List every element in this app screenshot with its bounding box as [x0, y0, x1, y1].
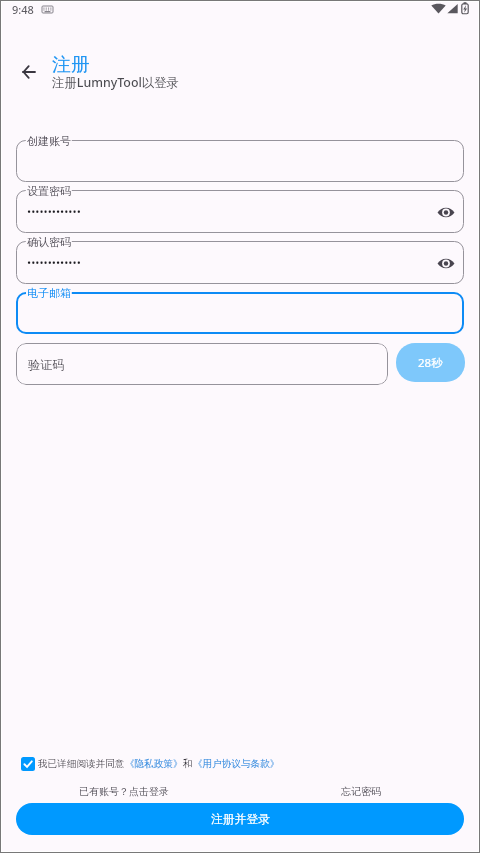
button[interactable]: •••••••••••••	[16, 241, 464, 284]
button[interactable]: Toggle password visibility	[433, 250, 459, 276]
button[interactable]: 创建账号	[16, 140, 464, 182]
button[interactable]: Back	[13, 56, 45, 88]
staticText: 忘记密码	[341, 785, 381, 798]
staticText: 注册LumnyTool以登录	[52, 74, 179, 91]
staticText: 《隐私政策》	[125, 758, 183, 770]
staticText: 9:48	[12, 2, 34, 17]
button[interactable]: 忘记密码	[341, 783, 381, 800]
staticText: 已有账号？点击登录	[79, 785, 169, 798]
staticText: 我已详细阅读并同意	[38, 758, 125, 770]
staticText: 确认密码	[27, 235, 71, 249]
button[interactable]: 我已详细阅读并同意	[21, 754, 280, 774]
button[interactable]: 注册并登录	[16, 803, 464, 835]
staticText: 《用户协议与条款》	[193, 758, 280, 770]
staticText: 创建账号	[27, 134, 71, 148]
button[interactable]: 28秒	[396, 343, 465, 382]
button[interactable]: •••••••••••••	[16, 190, 464, 233]
staticText: 电子邮箱	[27, 286, 71, 300]
staticText: •••••••••••••	[27, 255, 81, 270]
staticText: 设置密码	[27, 184, 71, 198]
button[interactable]: 已有账号？点击登录	[79, 783, 169, 800]
staticText: •••••••••••••	[27, 204, 81, 219]
staticText: 注册	[52, 53, 90, 77]
button[interactable]: 验证码	[16, 343, 388, 385]
staticText: 注册并登录	[211, 812, 270, 827]
staticText: 和	[183, 758, 193, 770]
staticText: 验证码	[28, 357, 65, 372]
button[interactable]: 电子邮箱	[16, 292, 464, 334]
staticText: 28秒	[418, 355, 443, 371]
button[interactable]: Toggle password visibility	[433, 199, 459, 225]
